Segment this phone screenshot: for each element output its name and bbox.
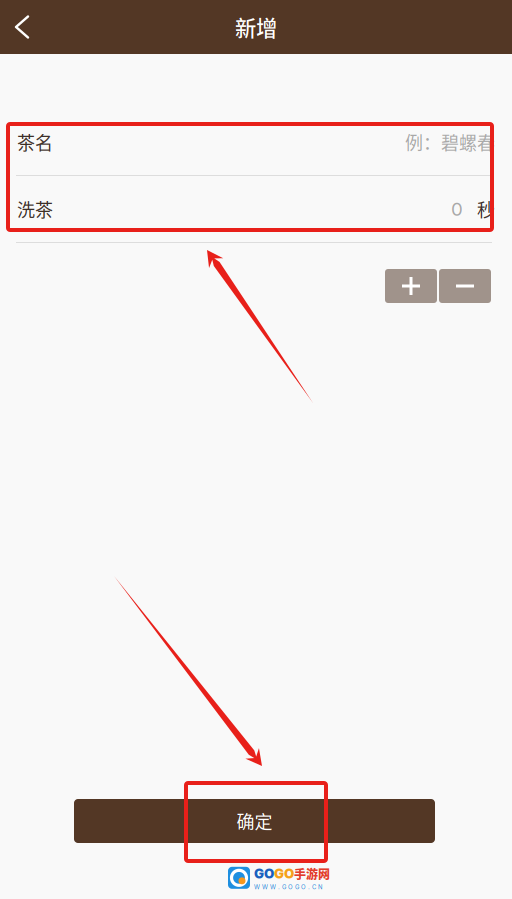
button[interactable]: Decrease — [439, 269, 491, 303]
button[interactable]: Increase — [385, 269, 437, 303]
staticText: 手游网 — [294, 865, 330, 882]
button[interactable]: 茶名 — [0, 109, 512, 175]
staticText: 洗茶 — [17, 196, 53, 222]
staticText: GO — [274, 866, 294, 882]
staticText: 茶名 — [17, 129, 53, 155]
staticText: 新增 — [235, 12, 277, 42]
staticText: GO — [254, 866, 274, 882]
button[interactable]: 确定 — [74, 799, 435, 843]
staticText: W W W . G O G O . C N — [254, 883, 323, 891]
staticText: 例：碧螺春 — [405, 129, 495, 155]
staticText: 秒 — [477, 196, 495, 222]
staticText: 确定 — [236, 808, 272, 834]
button[interactable]: Back — [0, 0, 44, 54]
button[interactable]: 洗茶 — [0, 176, 512, 242]
staticText: 0 — [451, 198, 463, 220]
